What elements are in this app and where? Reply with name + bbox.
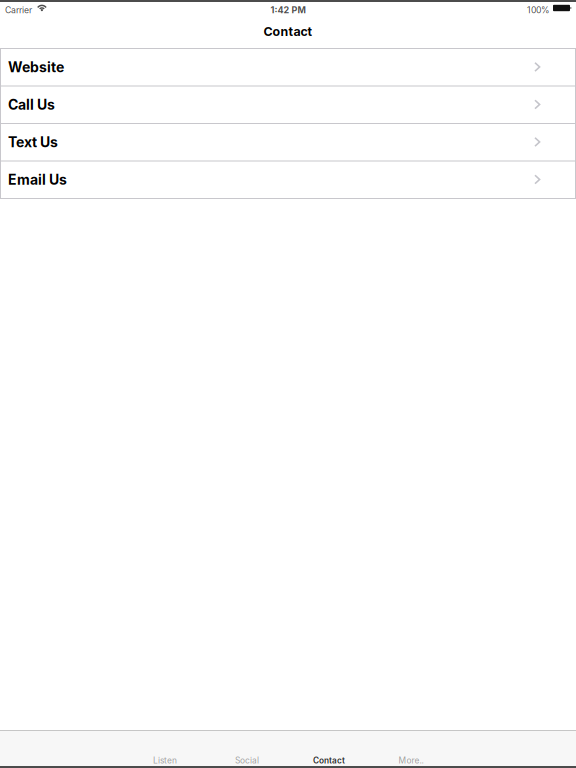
button[interactable]: Text Us [0,124,576,160]
button[interactable]: Website [0,49,576,85]
staticText: Carrier [5,5,32,15]
button[interactable]: Social [206,755,288,766]
staticText: Email Us [8,171,67,188]
staticText: Listen [153,755,177,766]
button[interactable]: Listen [124,755,206,766]
staticText: Text Us [8,134,58,151]
staticText: Contact [263,24,312,39]
button[interactable]: Email Us [0,161,576,198]
button[interactable]: Contact [288,755,370,765]
staticText: Website [8,59,64,76]
staticText: More.. [398,755,423,766]
staticText: Contact [313,755,345,765]
button[interactable]: More.. [370,755,452,766]
staticText: 1:42 PM [270,4,305,15]
staticText: 100% [527,5,550,15]
staticText: Social [235,755,259,766]
staticText: Call Us [8,96,55,113]
button[interactable]: Call Us [0,86,576,123]
